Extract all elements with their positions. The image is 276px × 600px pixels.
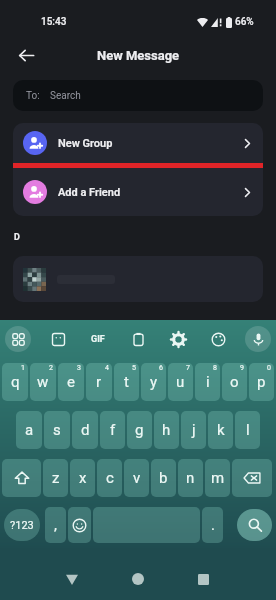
- staticText: 0: [267, 364, 271, 372]
- button[interactable]: .: [202, 507, 223, 543]
- button[interactable]: ,: [45, 507, 66, 543]
- staticText: 4: [105, 364, 109, 372]
- button[interactable]: mic: [245, 326, 271, 352]
- button[interactable]: Add a Friend: [13, 168, 263, 216]
- staticText: l: [246, 421, 250, 439]
- staticText: GIF: [91, 334, 105, 345]
- button[interactable]: emoji: [68, 507, 91, 543]
- staticText: s: [53, 421, 61, 439]
- button[interactable]: x: [70, 459, 95, 497]
- button[interactable]: f: [100, 411, 125, 449]
- staticText: 1: [21, 364, 25, 372]
- button[interactable]: q: [2, 363, 28, 401]
- button[interactable]: search: [237, 509, 272, 541]
- button[interactable]: Home: [120, 561, 156, 597]
- staticText: i: [206, 373, 210, 391]
- staticText: y: [150, 373, 158, 391]
- staticText: b: [159, 469, 168, 487]
- button[interactable]: ?123: [4, 509, 40, 541]
- staticText: p: [257, 373, 266, 391]
- button[interactable]: shift: [2, 459, 41, 497]
- button[interactable]: grid: [5, 326, 31, 352]
- staticText: d: [81, 421, 90, 439]
- button[interactable]: palette: [205, 326, 231, 352]
- button[interactable]: i: [195, 363, 220, 401]
- button[interactable]: To:: [13, 80, 263, 111]
- staticText: Add a Friend: [58, 186, 121, 199]
- staticText: New Message: [97, 48, 180, 63]
- staticText: 66%: [235, 16, 254, 28]
- button[interactable]: New Group: [13, 123, 263, 163]
- button[interactable]: h: [154, 411, 179, 449]
- button[interactable]: c: [97, 459, 122, 497]
- button[interactable]: t: [114, 363, 139, 401]
- staticText: 8: [213, 364, 217, 372]
- staticText: To:: [26, 90, 40, 102]
- button[interactable]: n: [178, 459, 203, 497]
- staticText: w: [37, 373, 49, 391]
- button[interactable]: j: [181, 411, 206, 449]
- button[interactable]: w: [30, 363, 56, 401]
- staticText: q: [11, 373, 20, 391]
- staticText: h: [162, 421, 171, 439]
- button[interactable]: a: [16, 411, 42, 449]
- button[interactable]: u: [168, 363, 193, 401]
- button[interactable]: Back: [54, 561, 90, 597]
- staticText: 5: [132, 364, 136, 372]
- button[interactable]: o: [222, 363, 247, 401]
- button[interactable]: y: [141, 363, 166, 401]
- staticText: t: [124, 373, 129, 391]
- staticText: m: [211, 469, 225, 487]
- staticText: 3: [77, 364, 81, 372]
- button[interactable]: b: [151, 459, 176, 497]
- staticText: a: [25, 421, 34, 439]
- button[interactable]: k: [208, 411, 233, 449]
- button[interactable]: v: [124, 459, 149, 497]
- button[interactable]: r: [86, 363, 112, 401]
- staticText: .: [211, 516, 215, 534]
- staticText: 7: [186, 364, 190, 372]
- staticText: c: [106, 469, 114, 487]
- button[interactable]: gear: [165, 326, 191, 352]
- staticText: ,: [54, 516, 57, 534]
- button[interactable]: [93, 507, 200, 543]
- staticText: j: [192, 421, 196, 439]
- button[interactable]: e: [58, 363, 84, 401]
- button[interactable]: l: [235, 411, 260, 449]
- staticText: n: [186, 469, 195, 487]
- button[interactable]: sticker: [45, 326, 71, 352]
- staticText: 9: [240, 364, 244, 372]
- button[interactable]: Recents: [185, 561, 221, 597]
- staticText: u: [176, 373, 185, 391]
- staticText: k: [217, 421, 225, 439]
- button[interactable]: z: [43, 459, 68, 497]
- staticText: f: [110, 421, 116, 439]
- staticText: v: [133, 469, 141, 487]
- staticText: New Group: [58, 137, 113, 150]
- staticText: x: [79, 469, 87, 487]
- button[interactable]: gif: [85, 326, 111, 352]
- button[interactable]: back: [232, 459, 272, 497]
- staticText: 6: [159, 364, 163, 372]
- staticText: 15:43: [41, 16, 67, 28]
- staticText: 2: [49, 364, 53, 372]
- staticText: o: [230, 373, 239, 391]
- staticText: D: [14, 232, 20, 243]
- staticText: z: [52, 469, 60, 487]
- button[interactable]: m: [205, 459, 230, 497]
- staticText: ?123: [10, 519, 34, 532]
- button[interactable]: s: [44, 411, 70, 449]
- button[interactable]: d: [72, 411, 98, 449]
- staticText: e: [67, 373, 75, 391]
- button[interactable]: p: [249, 363, 274, 401]
- staticText: g: [135, 421, 144, 439]
- staticText: r: [96, 373, 102, 391]
- button[interactable]: g: [127, 411, 152, 449]
- button[interactable]: clip: [125, 326, 151, 352]
- staticText: Search: [50, 90, 81, 102]
- button[interactable]: Back: [12, 41, 40, 69]
- button[interactable]: [13, 256, 263, 302]
